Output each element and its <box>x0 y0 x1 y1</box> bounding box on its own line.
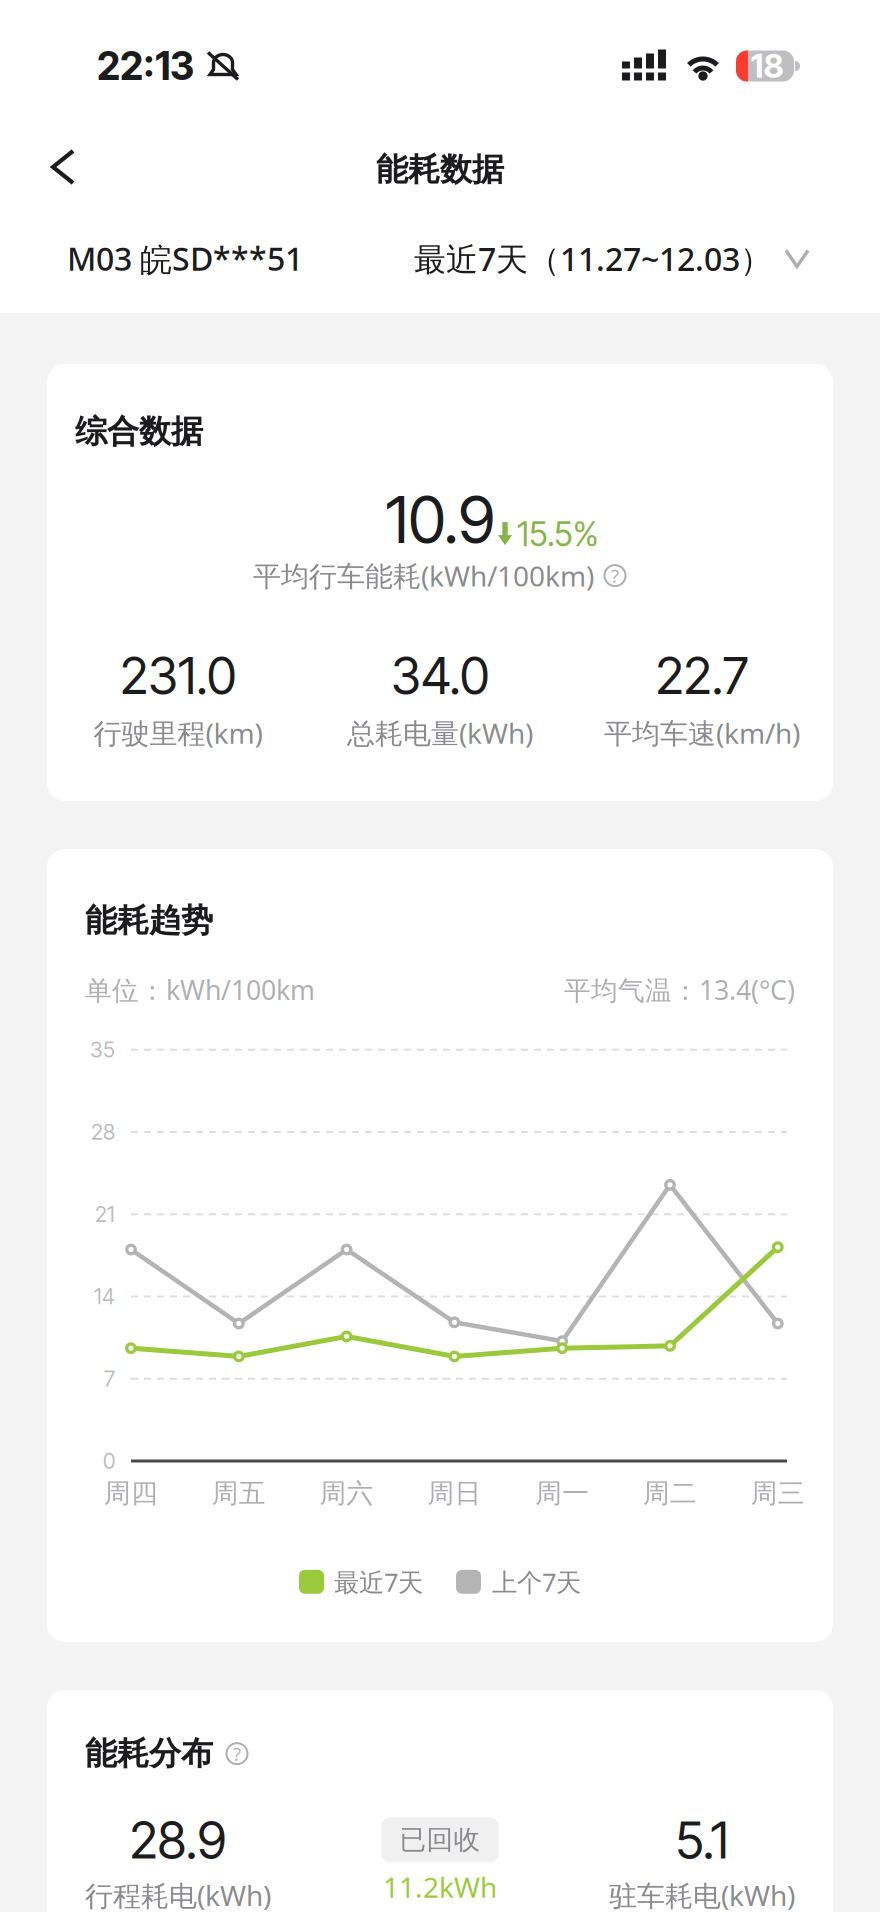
staticText: 平均行车能耗(kWh/100km) <box>253 557 594 594</box>
button[interactable]: Back <box>51 149 103 201</box>
staticText: 15.5% <box>517 514 599 554</box>
staticText: 7 <box>104 1366 115 1392</box>
staticText: 周一 <box>535 1477 589 1510</box>
staticText: 周日 <box>427 1477 481 1510</box>
staticText: 行驶里程(km) <box>93 714 262 751</box>
staticText: 单位：kWh/100km <box>85 972 315 1007</box>
staticText: 10.9 <box>385 481 494 558</box>
staticText: 周三 <box>751 1477 805 1510</box>
staticText: M03 皖SD***51 <box>67 237 303 280</box>
staticText: 综合数据 <box>75 412 203 451</box>
staticText: 总耗电量(kWh) <box>347 714 533 751</box>
staticText: 22:13 <box>97 43 194 89</box>
staticText: 平均气温：13.4(°C) <box>564 972 795 1007</box>
staticText: 34.0 <box>391 645 489 706</box>
staticText: 35 <box>90 1037 115 1063</box>
staticText: 28.9 <box>129 1809 226 1871</box>
staticText: 已回收 <box>399 1824 480 1856</box>
staticText: 最近7天（11.27~12.03） <box>414 237 772 280</box>
staticText: 21 <box>95 1201 115 1227</box>
staticText: ? <box>611 563 619 588</box>
staticText: 周六 <box>320 1477 374 1510</box>
staticText: 0 <box>103 1448 115 1474</box>
staticText: 28 <box>91 1119 115 1145</box>
staticText: 平均车速(km/h) <box>604 714 800 751</box>
staticText: 驻车耗电(kWh) <box>609 1877 795 1912</box>
staticText: 14 <box>94 1284 115 1309</box>
staticText: ? <box>233 1741 241 1766</box>
staticText: 能耗数据 <box>376 150 504 189</box>
staticText: 11.2kWh <box>383 1868 497 1905</box>
staticText: 5.1 <box>675 1809 728 1871</box>
staticText: 231.0 <box>120 645 236 706</box>
staticText: 能耗趋势 <box>85 901 213 940</box>
staticText: 22.7 <box>655 645 748 706</box>
staticText: 能耗分布 <box>85 1734 213 1773</box>
staticText: 周二 <box>643 1477 697 1510</box>
staticText: 最近7天 <box>334 1565 423 1599</box>
staticText: 周五 <box>212 1477 266 1510</box>
staticText: 上个7天 <box>492 1565 581 1599</box>
staticText: 行程耗电(kWh) <box>85 1877 271 1912</box>
staticText: 周四 <box>104 1477 158 1510</box>
staticText: 18 <box>750 47 783 85</box>
button[interactable]: 最近7天（11.27~12.03） <box>414 237 810 280</box>
